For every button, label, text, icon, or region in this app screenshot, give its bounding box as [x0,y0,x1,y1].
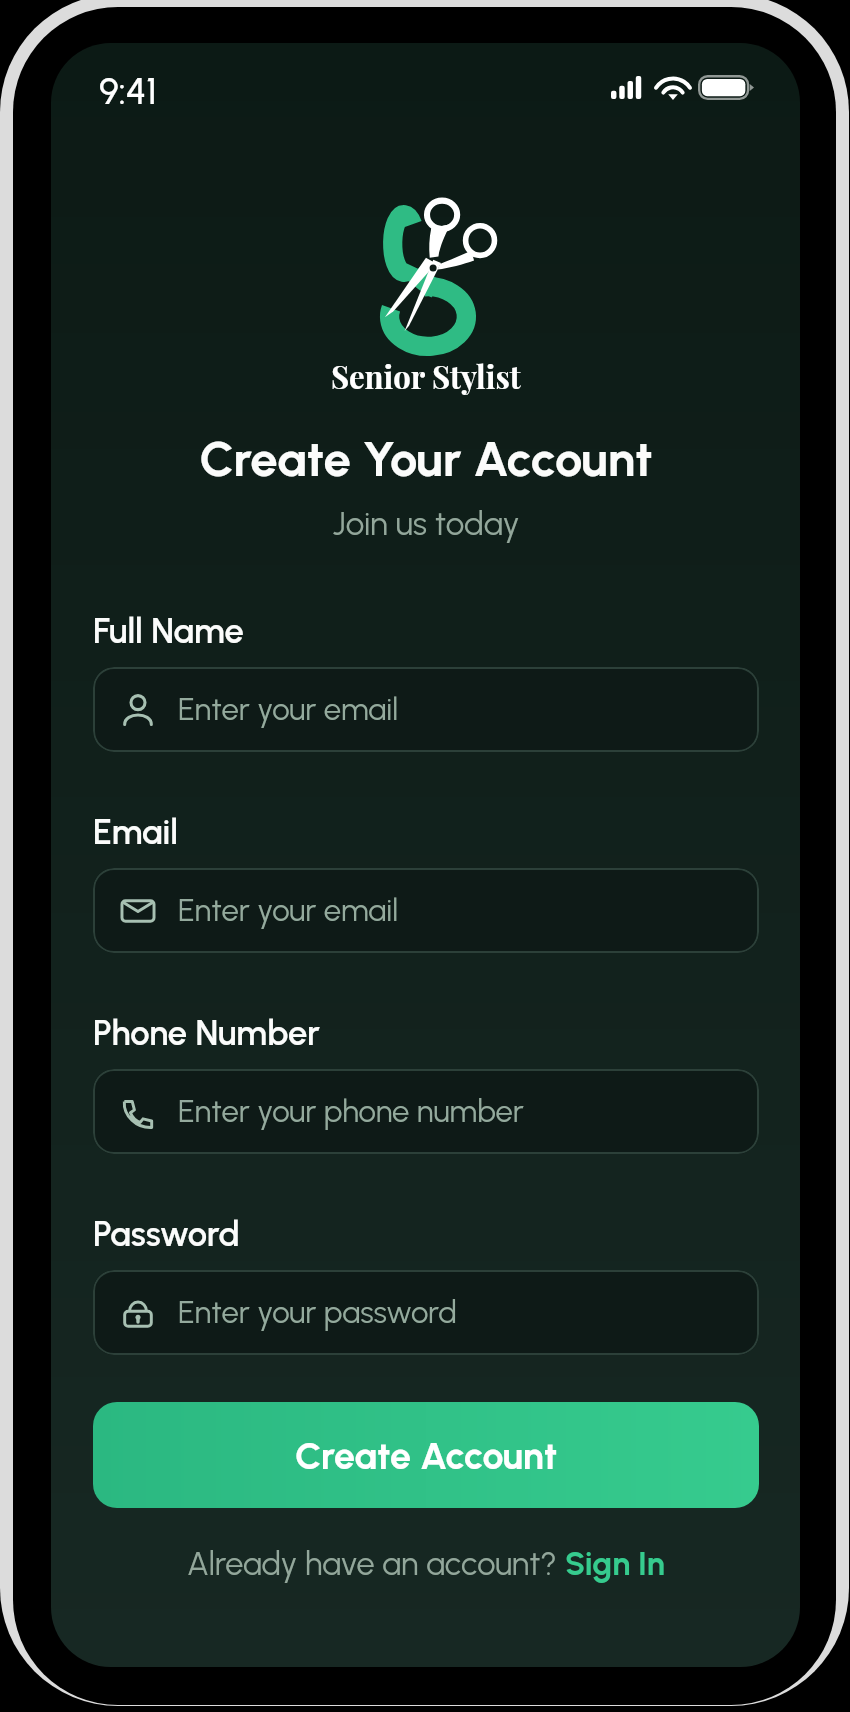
staticText: Enter your email [178,691,399,728]
staticText: Email [93,811,179,852]
button[interactable]: Enter your email [93,667,759,752]
staticText: Senior Stylist [331,355,521,396]
staticText: Password [93,1213,240,1254]
staticText: Full Name [93,610,244,651]
staticText: Create Account [295,1433,558,1478]
staticText: Phone Number [93,1012,320,1053]
staticText: 9:41 [99,69,157,113]
staticText: Already have an account? [187,1544,565,1583]
staticText: Enter your password [178,1294,457,1331]
staticText: Join us today [332,504,520,544]
button[interactable]: Enter your password [93,1270,759,1355]
staticText: Create Your Account [199,429,653,488]
button[interactable]: Already have an account? [51,1544,800,1583]
button[interactable]: Create Account [93,1402,759,1508]
staticText: Enter your email [178,892,399,929]
button[interactable]: Enter your email [93,868,759,953]
button[interactable]: Enter your phone number [93,1069,759,1154]
staticText: Enter your phone number [178,1093,524,1130]
staticText: Sign In [565,1544,665,1583]
